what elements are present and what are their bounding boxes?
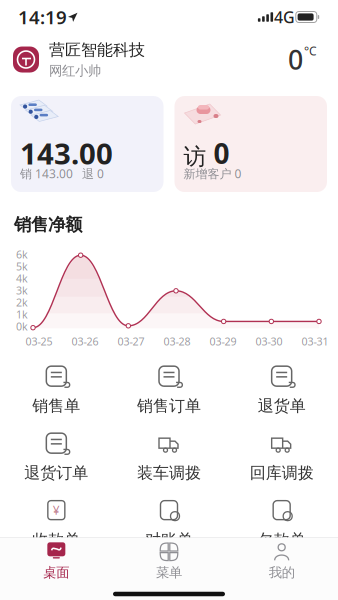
staticText: 网红小帅: [49, 63, 101, 79]
staticText: 03-30: [255, 334, 282, 348]
staticText: °C: [304, 43, 317, 59]
staticText: 回库调拨: [250, 463, 314, 483]
button[interactable]: ¥: [0, 490, 113, 557]
staticText: 03-29: [209, 334, 236, 348]
staticText: 03-27: [117, 334, 144, 348]
staticText: 退货订单: [24, 463, 88, 483]
button[interactable]: 退货订单: [0, 423, 113, 490]
staticText: 销售单: [32, 396, 80, 416]
button[interactable]: 访: [174, 96, 327, 192]
staticText: 桌面: [43, 564, 69, 581]
staticText: 0k: [16, 319, 28, 333]
staticText: 销售订单: [137, 396, 201, 416]
button[interactable]: 销售订单: [113, 356, 225, 423]
button[interactable]: 桌面: [0, 538, 113, 585]
staticText: 收款单: [32, 530, 80, 550]
staticText: 退货单: [258, 396, 306, 416]
staticText: 0: [213, 134, 229, 172]
staticText: 2k: [16, 295, 28, 309]
staticText: 对账单: [145, 530, 193, 550]
staticText: 菜单: [156, 564, 182, 581]
staticText: 1k: [16, 307, 28, 321]
staticText: ¥: [53, 502, 60, 518]
staticText: 3k: [16, 283, 28, 297]
staticText: 新增客户 0: [183, 166, 241, 181]
button[interactable]: 我的: [225, 538, 338, 585]
staticText: 销售净额: [14, 214, 82, 235]
staticText: 03-26: [71, 334, 98, 348]
staticText: 03-31: [301, 334, 328, 348]
button[interactable]: 销售单: [0, 356, 113, 423]
button[interactable]: 欠款单: [225, 490, 338, 557]
staticText: 14:19: [18, 5, 67, 29]
staticText: 4k: [16, 271, 28, 285]
staticText: 装车调拨: [137, 463, 201, 483]
staticText: 访: [183, 143, 206, 171]
staticText: 4G: [274, 6, 295, 28]
button[interactable]: 回库调拨: [225, 423, 338, 490]
staticText: 销 143.00 退 0: [20, 166, 104, 181]
staticText: 6k: [16, 247, 28, 261]
button[interactable]: 对账单: [113, 490, 225, 557]
staticText: 03-25: [25, 334, 52, 348]
staticText: 营匠智能科技: [49, 40, 145, 60]
button[interactable]: 143.00: [11, 96, 163, 192]
staticText: 欠款单: [258, 530, 306, 550]
staticText: 143.00: [20, 134, 113, 173]
staticText: 5k: [16, 259, 28, 273]
staticText: 0: [288, 42, 303, 77]
staticText: 03-28: [163, 334, 190, 348]
staticText: 我的: [269, 564, 295, 581]
button[interactable]: 菜单: [113, 538, 225, 585]
button[interactable]: 装车调拨: [113, 423, 225, 490]
button[interactable]: 退货单: [225, 356, 338, 423]
